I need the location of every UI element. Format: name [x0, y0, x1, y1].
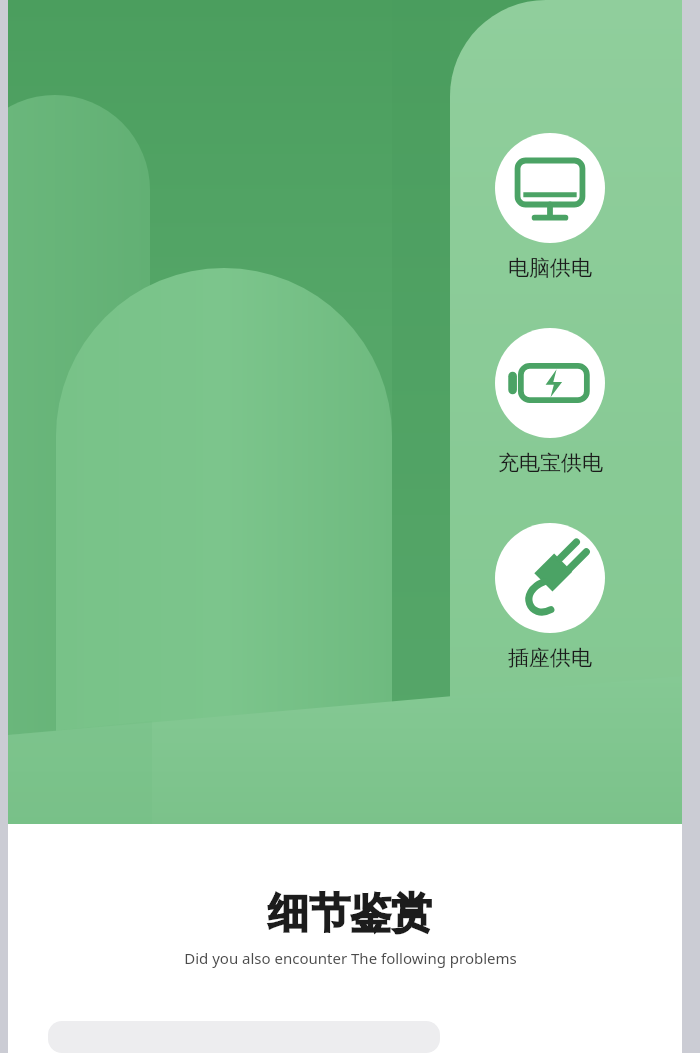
button[interactable]: Socket power	[450, 523, 650, 671]
button[interactable]: Computer power	[450, 133, 650, 281]
staticText: 充电宝供电	[498, 450, 603, 476]
staticText: 细节鉴赏	[268, 888, 432, 940]
staticText: Did you also encounter The following pro…	[184, 948, 517, 968]
button[interactable]: Power bank power	[450, 328, 650, 476]
staticText: 插座供电	[508, 645, 592, 671]
staticText: 电脑供电	[508, 255, 592, 281]
